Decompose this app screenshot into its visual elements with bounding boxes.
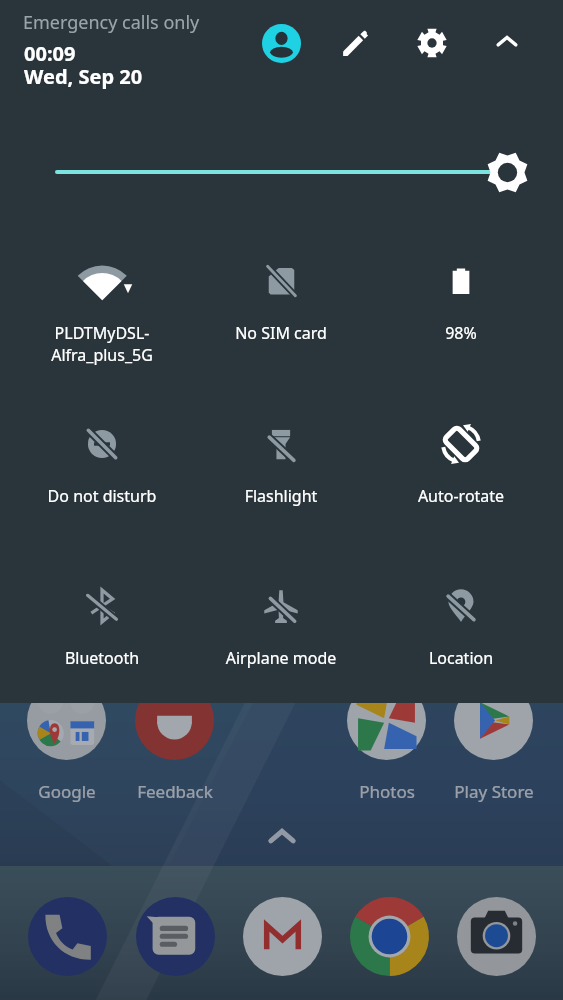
staticText: 00:09: [24, 40, 76, 67]
staticText: Flashlight: [192, 485, 370, 507]
staticText: Play Store: [440, 780, 548, 803]
button[interactable]: Settings: [410, 21, 454, 65]
button[interactable]: Flashlight: [192, 400, 370, 525]
button[interactable]: User: [262, 24, 301, 63]
staticText: Google: [13, 780, 121, 803]
staticText: Bluetooth: [13, 647, 191, 669]
button[interactable]: Photos: [333, 681, 441, 801]
button[interactable]: Collapse: [485, 20, 529, 64]
button[interactable]: Auto-rotate: [372, 400, 550, 525]
button[interactable]: No SIM card: [192, 237, 370, 362]
staticText: Emergency calls only: [23, 10, 200, 35]
button[interactable]: Brightness: [486, 151, 529, 194]
button[interactable]: Camera: [457, 897, 536, 976]
button[interactable]: Do not disturb: [13, 400, 191, 525]
button[interactable]: All apps: [263, 818, 301, 856]
button[interactable]: Play Store: [440, 681, 548, 801]
button[interactable]: Google: [13, 681, 121, 801]
button[interactable]: Bluetooth: [13, 562, 191, 687]
button[interactable]: 98%: [372, 237, 550, 362]
staticText: No SIM card: [192, 322, 370, 344]
button[interactable]: Phone: [28, 897, 107, 976]
staticText: PLDTMyDSL- Alfra_plus_5G: [13, 322, 191, 366]
button[interactable]: PLDTMyDSL- Alfra_plus_5G: [13, 237, 191, 362]
button[interactable]: Location: [372, 562, 550, 687]
button[interactable]: Chrome: [350, 897, 429, 976]
staticText: Airplane mode: [192, 647, 370, 669]
button[interactable]: Messages: [136, 897, 215, 976]
staticText: Photos: [333, 780, 441, 803]
button[interactable]: Feedback: [121, 681, 229, 801]
staticText: 98%: [372, 322, 550, 344]
button[interactable]: Airplane mode: [192, 562, 370, 687]
staticText: Auto-rotate: [372, 485, 550, 507]
button[interactable]: Edit: [334, 21, 378, 65]
staticText: Location: [372, 647, 550, 669]
button[interactable]: Gmail: [243, 897, 322, 976]
staticText: Wed, Sep 20: [24, 63, 143, 90]
staticText: Feedback: [121, 780, 229, 803]
staticText: Do not disturb: [13, 485, 191, 507]
